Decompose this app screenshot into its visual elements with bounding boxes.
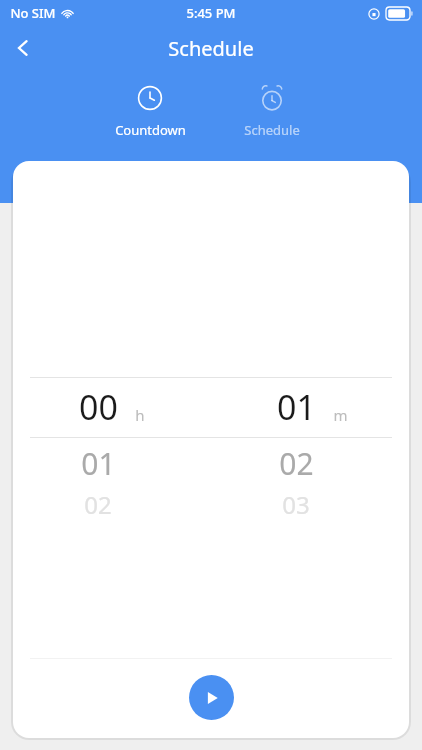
button[interactable]: Start timer bbox=[189, 675, 234, 720]
staticText: 02 bbox=[84, 488, 112, 521]
staticText: 00 bbox=[79, 384, 118, 430]
button[interactable]: Countdown bbox=[94, 83, 206, 141]
staticText: 5:45 PM bbox=[186, 4, 236, 22]
button[interactable]: 00 bbox=[13, 377, 409, 437]
button[interactable]: Back bbox=[0, 26, 46, 70]
button[interactable]: 01 bbox=[13, 438, 409, 488]
staticText: Schedule bbox=[168, 35, 254, 62]
staticText: 03 bbox=[282, 488, 310, 521]
staticText: 01 bbox=[81, 443, 116, 484]
staticText: Schedule bbox=[244, 121, 300, 139]
staticText: h bbox=[135, 405, 145, 425]
button[interactable]: Schedule bbox=[216, 83, 328, 141]
staticText: Countdown bbox=[115, 121, 186, 139]
staticText: No SIM bbox=[10, 4, 56, 22]
staticText: 01 bbox=[277, 384, 316, 430]
staticText: 02 bbox=[279, 443, 314, 484]
staticText: m bbox=[333, 405, 348, 425]
